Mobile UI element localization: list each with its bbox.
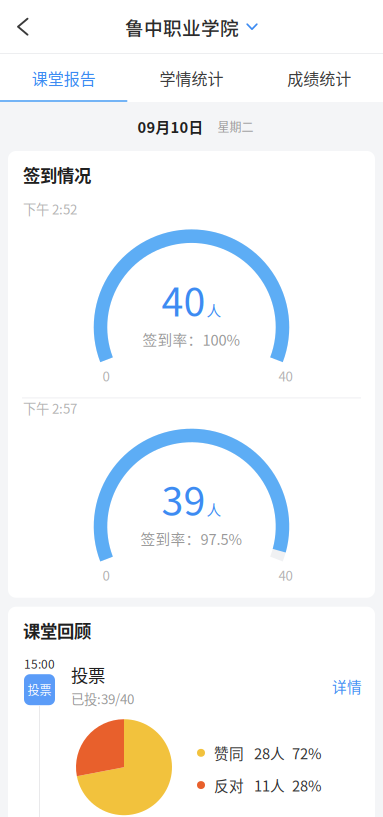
staticText: 学情统计 [159, 66, 223, 90]
button[interactable]: 详情 [322, 659, 366, 703]
staticText: 28% [292, 774, 322, 796]
staticText: 反对 [214, 774, 244, 796]
staticText: 11人 [254, 774, 285, 796]
staticText: 0 [102, 366, 109, 385]
staticText: 投票 [27, 681, 51, 698]
button[interactable]: 成绩统计 [255, 54, 383, 102]
staticText: 09月10日 [137, 116, 203, 137]
staticText: 0 [102, 565, 109, 585]
staticText: 鲁中职业学院 [125, 13, 239, 40]
staticText: 详情 [332, 676, 362, 697]
staticText: 40 [278, 366, 292, 385]
staticText: 39 [161, 470, 205, 527]
staticText: 下午 2:52 [23, 199, 77, 218]
staticText: 签到率：97.5% [140, 528, 242, 549]
staticText: 课堂回顾 [23, 618, 91, 643]
staticText: 投票 [71, 662, 105, 687]
staticText: 赞同 [214, 742, 244, 763]
staticText: 签到率：100% [142, 329, 240, 350]
staticText: 成绩统计 [287, 66, 351, 90]
staticText: 已投:39/40 [71, 689, 134, 708]
staticText: 星期二 [217, 118, 253, 135]
staticText: 72% [292, 742, 322, 763]
button[interactable]: Back [0, 0, 46, 54]
staticText: 课堂报告 [32, 66, 96, 90]
staticText: 人 [206, 499, 221, 520]
button[interactable]: 课堂报告 [0, 54, 128, 102]
staticText: 40 [161, 271, 205, 328]
staticText: 人 [206, 299, 221, 321]
button[interactable]: 学情统计 [128, 54, 255, 102]
button[interactable]: 鲁中职业学院 [117, 0, 266, 54]
staticText: 15:00 [24, 655, 55, 672]
staticText: 签到情况 [23, 162, 91, 187]
staticText: 40 [278, 565, 292, 585]
staticText: 28人 [254, 742, 285, 763]
staticText: 下午 2:57 [23, 398, 77, 418]
